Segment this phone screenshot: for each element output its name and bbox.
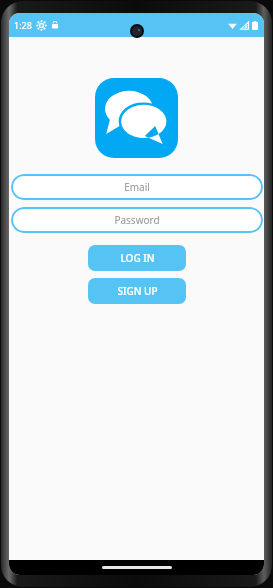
staticText: SIGN UP xyxy=(117,284,158,298)
staticText: 1:28 xyxy=(14,19,32,31)
button[interactable]: SIGN UP xyxy=(88,278,186,304)
staticText: Password xyxy=(114,213,160,227)
button[interactable]: Password xyxy=(11,207,263,233)
staticText: Email xyxy=(124,180,150,194)
button[interactable]: Email xyxy=(11,174,263,200)
button[interactable]: LOG IN xyxy=(88,245,186,271)
staticText: LOG IN xyxy=(120,251,155,265)
